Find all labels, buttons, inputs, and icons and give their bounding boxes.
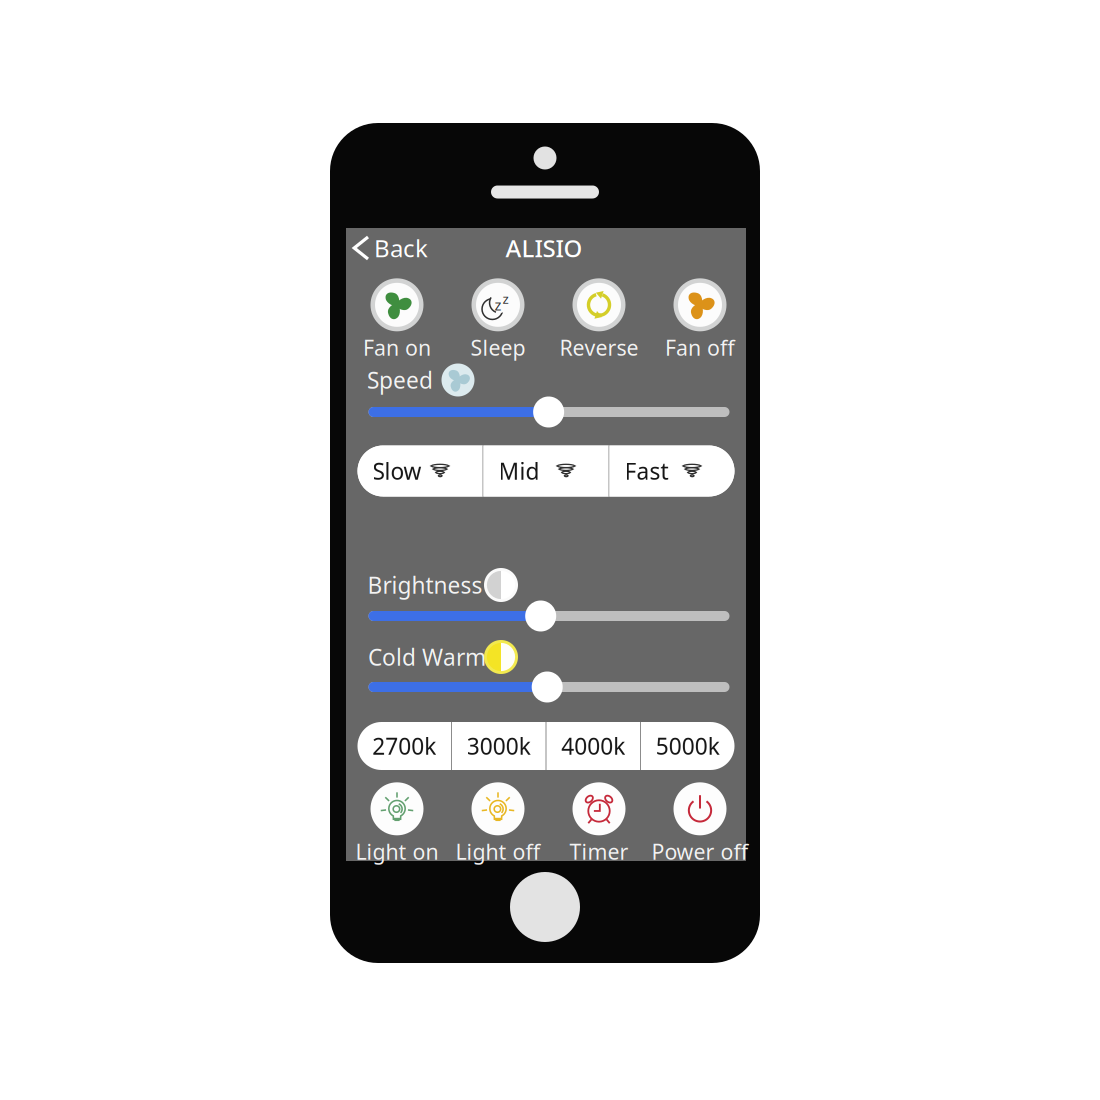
staticText: Slow [372,456,421,486]
button[interactable]: z [470,278,525,362]
staticText: Sleep [470,333,525,362]
button[interactable]: Fan off [665,278,735,362]
button[interactable]: Mid [483,445,608,496]
staticText: Power off [651,837,748,866]
staticText: Fan on [363,333,431,362]
staticText: 5000k [656,731,720,761]
staticText: Light on [355,837,438,866]
staticText: Timer [569,837,628,866]
staticText: Reverse [559,333,638,362]
staticText: z [495,295,502,315]
button[interactable]: Fan on [363,278,431,362]
staticText: Mid [498,456,539,486]
button[interactable]: 4000k [546,722,640,770]
button[interactable]: Power off [651,782,748,866]
staticText: ALISIO [505,232,582,264]
button[interactable]: Reverse [559,278,638,362]
staticText: z [502,290,508,307]
button[interactable]: Light off [455,782,540,866]
button[interactable]: Light on [355,782,438,866]
button[interactable]: 3000k [452,722,545,770]
staticText: 3000k [467,731,531,761]
button[interactable]: 2700k [357,722,451,770]
button[interactable]: Fast [609,445,734,496]
staticText: Speed [367,365,433,395]
staticText: 4000k [561,731,625,761]
staticText: Light off [455,837,540,866]
button[interactable]: Slow [357,445,482,496]
button[interactable]: 5000k [641,722,734,770]
staticText: Fast [624,456,668,486]
staticText: 2700k [372,731,436,761]
button[interactable]: Back [344,226,438,270]
staticText: Fan off [665,333,735,362]
staticText: Brightness [367,570,482,600]
staticText: Back [374,232,428,264]
staticText: Cold Warm [368,642,486,672]
button[interactable]: Timer [569,782,628,866]
